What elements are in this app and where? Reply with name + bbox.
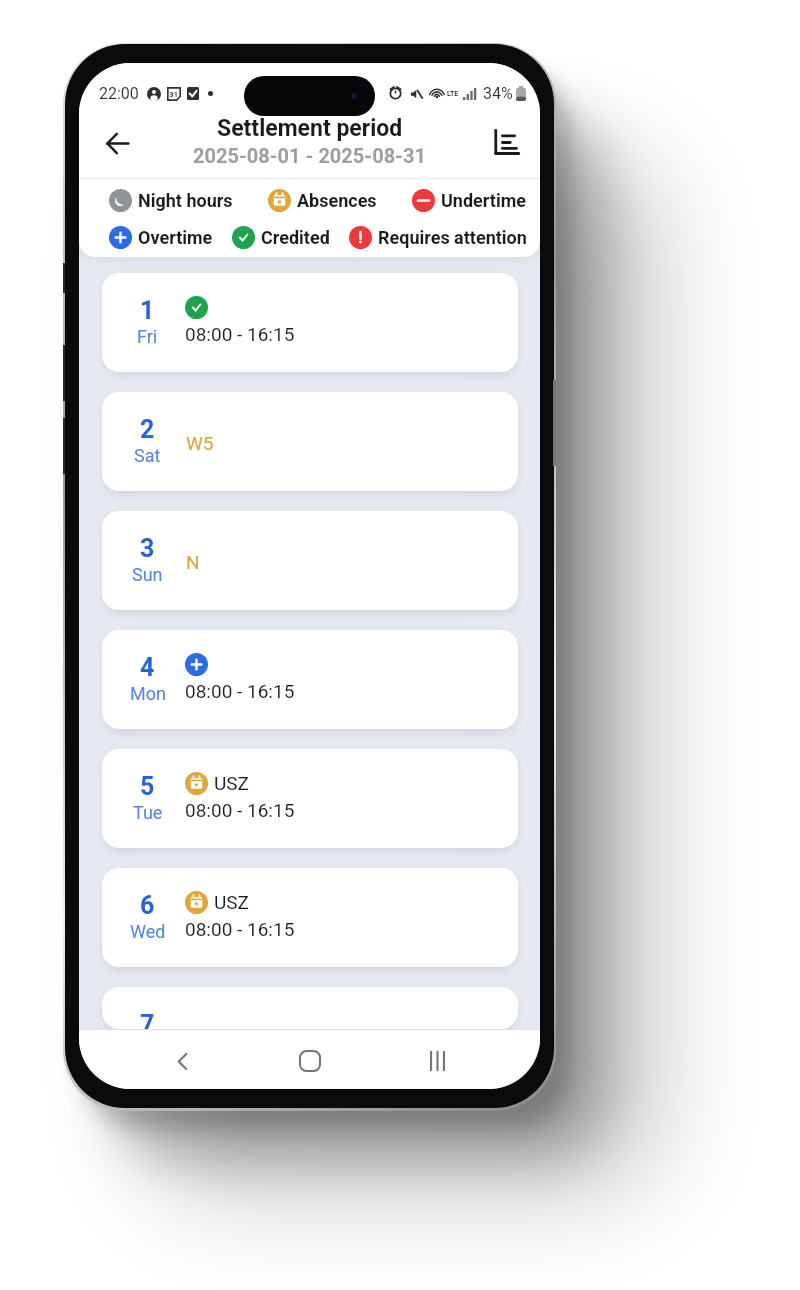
staticText: Absences — [297, 190, 377, 211]
staticText: Overtime — [138, 227, 213, 248]
button[interactable]: Credited — [232, 226, 330, 249]
button[interactable]: Absences — [268, 189, 377, 212]
staticText: N — [186, 551, 200, 573]
staticText: Undertime — [441, 190, 527, 211]
staticText: Wed — [130, 921, 166, 942]
button[interactable]: Night hours — [109, 189, 233, 212]
staticText: 08:00 - 16:15 — [185, 323, 295, 345]
staticText: USZ — [214, 772, 249, 794]
staticText: 08:00 - 16:15 — [185, 680, 295, 702]
staticText: Credited — [261, 227, 330, 248]
staticText: 3 — [140, 534, 155, 563]
staticText: 7 — [140, 1010, 155, 1029]
staticText: Tue — [133, 802, 163, 823]
staticText: Night hours — [138, 190, 233, 211]
staticText: Sun — [132, 564, 163, 585]
button[interactable]: 3 — [102, 511, 518, 610]
staticText: 2 — [140, 415, 155, 444]
staticText: 4 — [140, 653, 155, 682]
staticText: Requires attention — [378, 227, 527, 248]
staticText: Sat — [134, 445, 161, 466]
staticText: Mon — [130, 683, 166, 704]
button[interactable]: 6 — [102, 868, 518, 967]
button[interactable]: Recent apps — [413, 1037, 461, 1085]
button[interactable]: Undertime — [412, 189, 527, 212]
staticText: W5 — [186, 432, 214, 454]
staticText: Fri — [137, 326, 158, 347]
staticText: 6 — [140, 891, 155, 920]
staticText: 08:00 - 16:15 — [185, 799, 295, 821]
staticText: 2025-08-01 - 2025-08-31 — [193, 144, 426, 167]
staticText: Settlement period — [217, 115, 403, 142]
button[interactable]: Back — [158, 1037, 206, 1085]
button[interactable]: 1 — [102, 273, 518, 372]
staticText: 1 — [140, 296, 155, 325]
staticText: LTE — [447, 90, 459, 98]
staticText: 34% — [483, 84, 513, 103]
staticText: 31 — [169, 90, 179, 99]
button[interactable]: 7 — [102, 987, 518, 1029]
button[interactable]: 5 — [102, 749, 518, 848]
staticText: 22:00 — [99, 84, 139, 103]
staticText: USZ — [214, 891, 249, 913]
button[interactable]: 4 — [102, 630, 518, 729]
button[interactable]: Summary report — [484, 120, 528, 164]
button[interactable]: Home — [286, 1037, 334, 1085]
staticText: 5 — [140, 772, 155, 801]
button[interactable]: Overtime — [109, 226, 213, 249]
button[interactable]: Back — [95, 121, 139, 165]
button[interactable]: Requires attention — [349, 226, 527, 249]
staticText: 08:00 - 16:15 — [185, 918, 295, 940]
button[interactable]: 2 — [102, 392, 518, 491]
